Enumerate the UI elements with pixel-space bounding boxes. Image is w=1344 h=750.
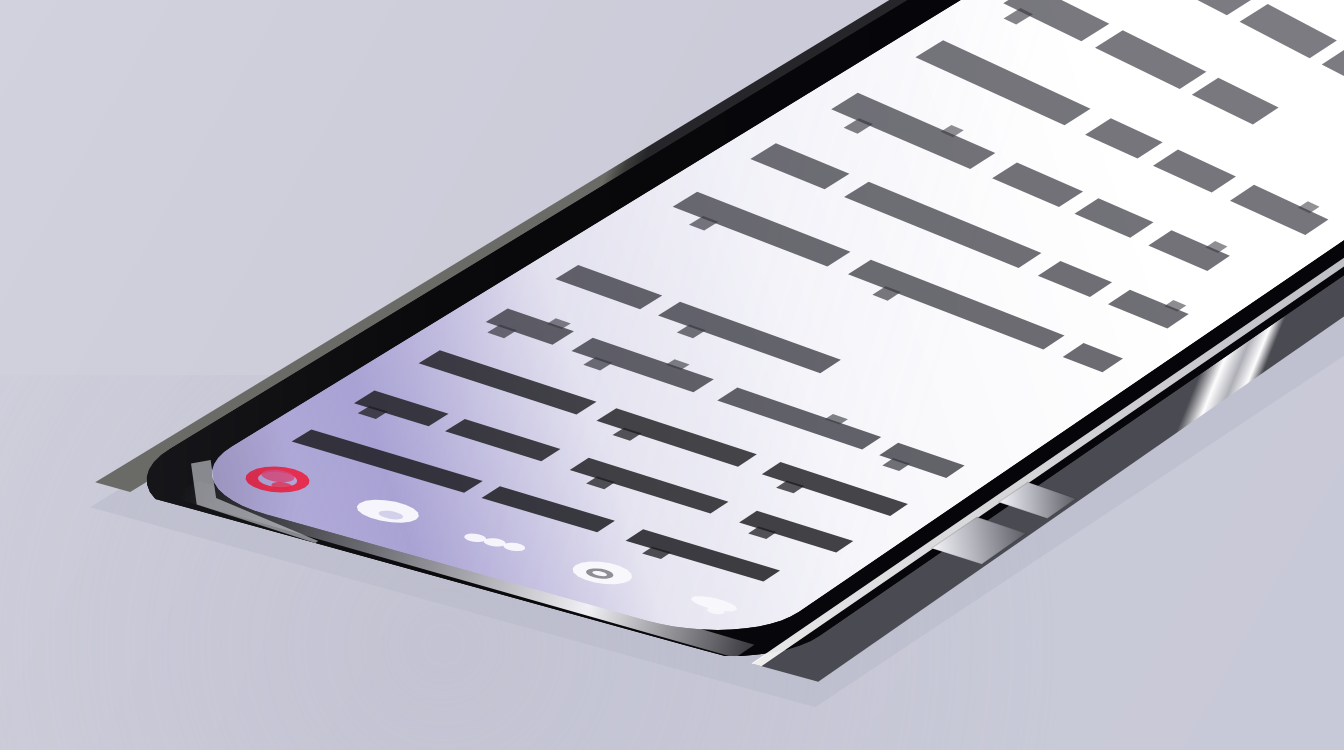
button[interactable]: Reading screen on phone (0, 0, 1344, 750)
